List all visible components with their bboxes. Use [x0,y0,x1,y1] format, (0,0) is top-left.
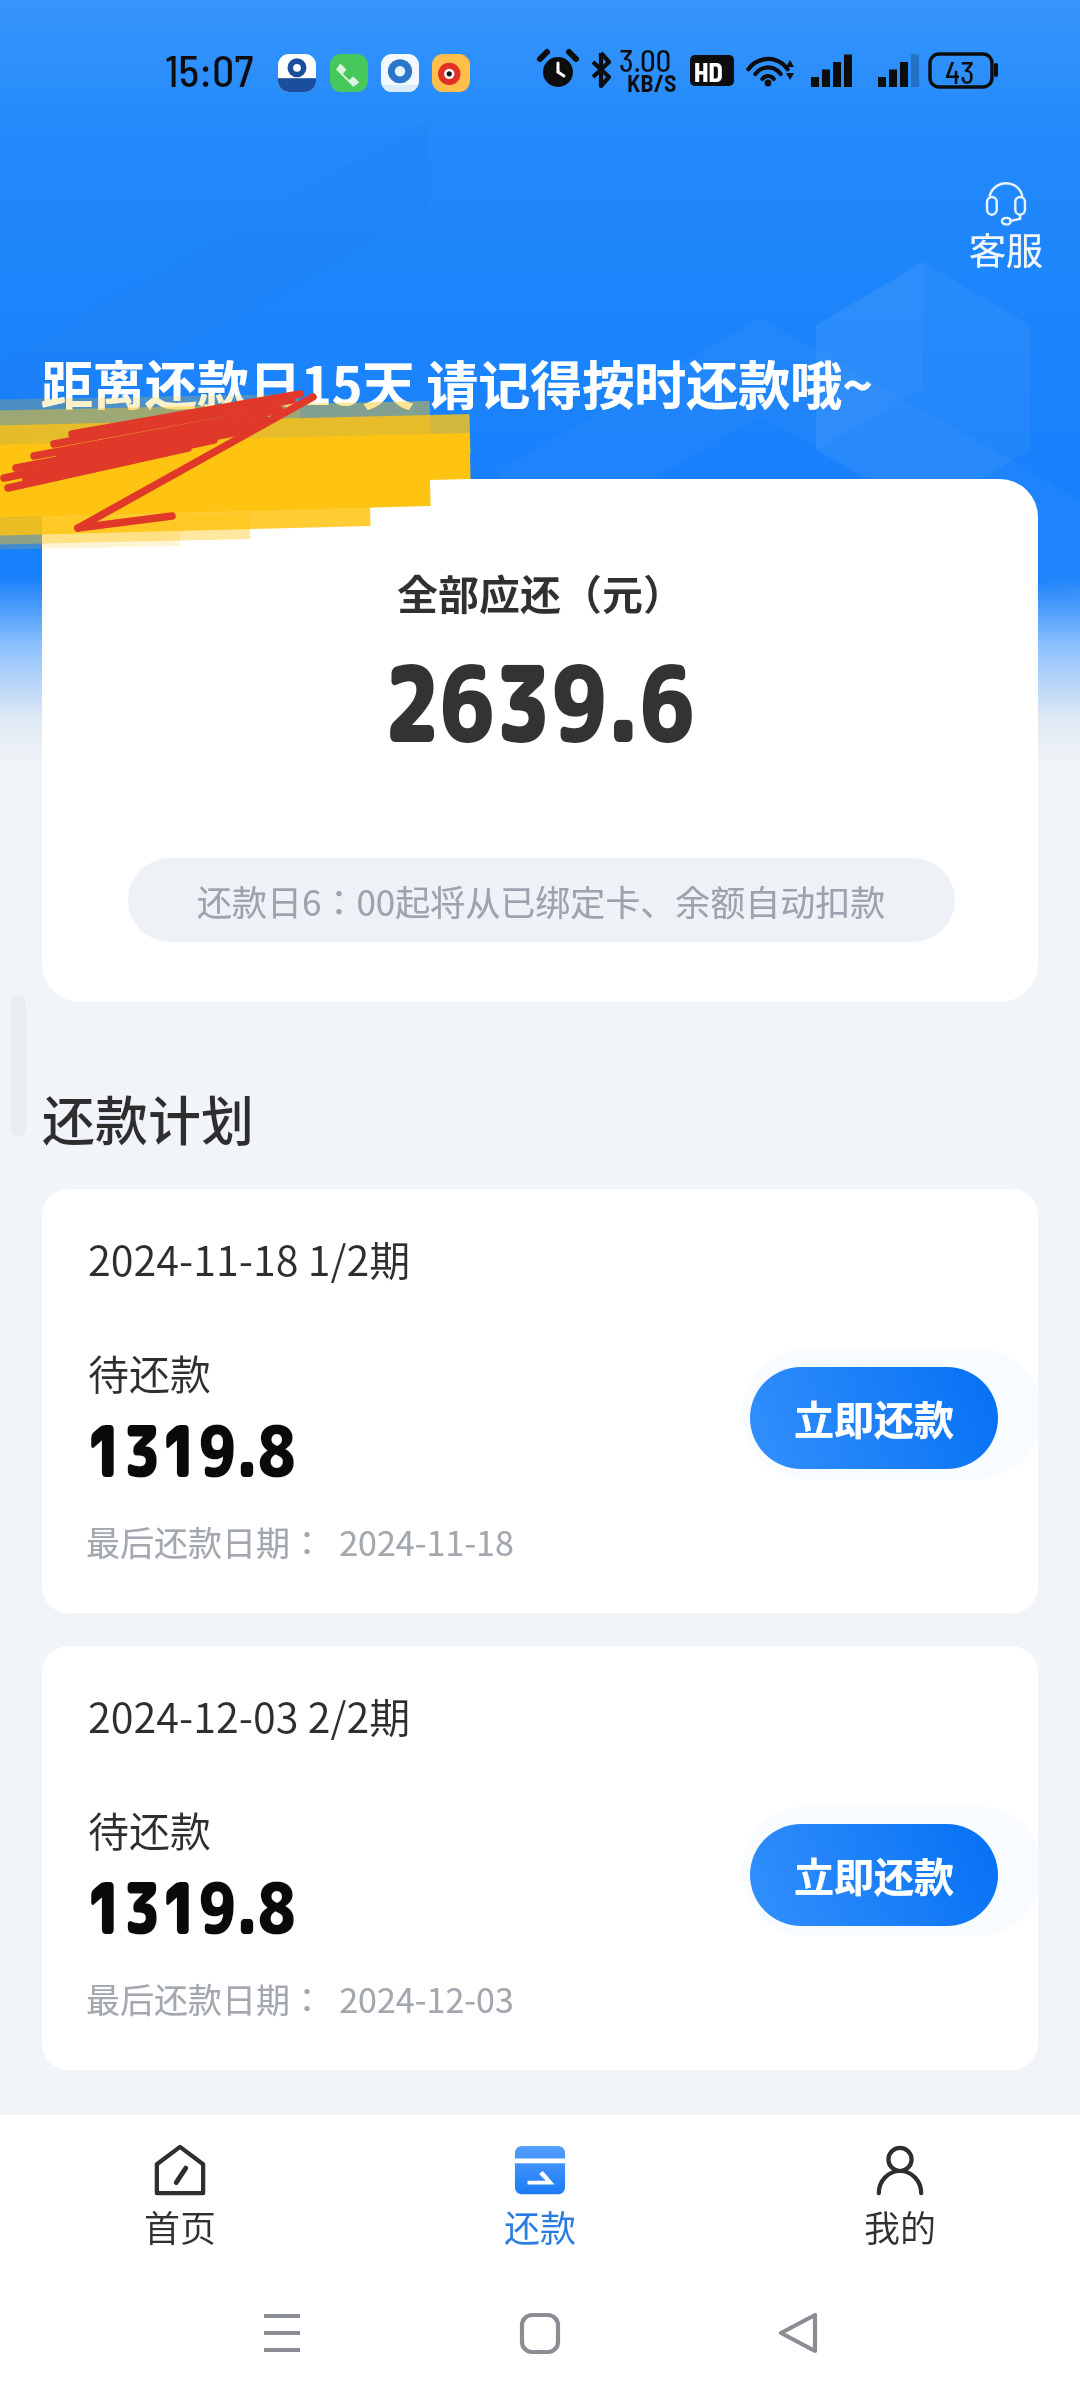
staticText: KB/S [627,68,677,97]
staticText: 2639.6 [384,629,696,775]
staticText: 最后还款日期： 2024-11-18 [86,1517,514,1566]
staticText: 2024-12-03 2/2期 [88,1685,411,1744]
staticText: 43 [945,54,975,90]
button[interactable]: 立即还款 [750,1824,998,1926]
button[interactable]: 首页 [0,2115,360,2252]
button[interactable]: 立即还款 [750,1367,998,1469]
staticText: 全部应还（元） [397,562,684,621]
button[interactable]: 还款 [360,2115,720,2252]
button[interactable]: 我的 [720,2115,1080,2252]
staticText: 距离还款日15天 请记得按时还款哦~ [41,345,873,420]
button[interactable]: 客服 Customer service [952,180,1060,284]
staticText: 1319.8 [86,1858,296,1957]
staticText: 1319.8 [86,1401,296,1500]
staticText: 待还款 [88,1799,211,1858]
staticText: 客服 [969,222,1043,276]
staticText: 我的 [864,2200,937,2252]
staticText: 首页 [144,2200,217,2252]
staticText: 立即还款 [794,1846,954,1904]
staticText: 立即还款 [794,1389,954,1447]
button[interactable]: 2024-11-18 1/2期 [42,1189,1038,1613]
staticText: HD [694,56,723,87]
staticText: 15:07 [165,43,254,96]
button[interactable]: 全部应还（元） [42,479,1038,1002]
staticText: 还款 [504,2200,577,2252]
button[interactable]: Recent apps [242,2293,322,2373]
staticText: 最后还款日期： 2024-12-03 [86,1974,514,2023]
button[interactable]: Home [500,2293,580,2373]
button[interactable]: 2024-12-03 2/2期 [42,1646,1038,2070]
button[interactable]: Back [758,2293,838,2373]
staticText: 还款日6：00起将从已绑定卡、余额自动扣款 [197,875,886,926]
staticText: 待还款 [88,1342,211,1401]
staticText: 3.00 [619,41,672,78]
staticText: 2024-11-18 1/2期 [88,1228,411,1287]
staticText: 还款计划 [42,1080,254,1157]
